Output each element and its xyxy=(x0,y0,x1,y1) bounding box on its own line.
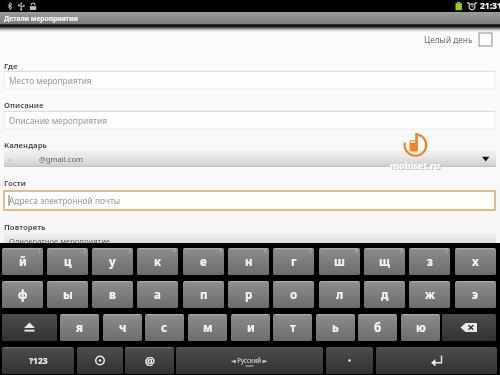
button[interactable]: х xyxy=(455,248,496,275)
button[interactable]: о xyxy=(273,281,314,308)
button[interactable]: т xyxy=(273,314,312,341)
staticText: 9 xyxy=(400,248,403,255)
button[interactable]: ч xyxy=(103,314,142,341)
staticText: 2 xyxy=(83,248,86,255)
staticText: ф xyxy=(18,287,28,303)
button[interactable]: ж xyxy=(409,281,450,308)
staticText: 5 xyxy=(219,248,222,255)
staticText: ш xyxy=(334,254,345,270)
button[interactable]: Backspace xyxy=(442,314,496,341)
button[interactable]: и xyxy=(231,314,270,341)
staticText: з xyxy=(427,254,433,270)
staticText: и xyxy=(247,320,255,336)
staticText: ?123 xyxy=(29,355,48,367)
button[interactable]: Period xyxy=(326,347,373,374)
button[interactable]: ь xyxy=(316,314,355,341)
button[interactable]: с xyxy=(145,314,184,341)
staticText: т xyxy=(290,320,296,336)
staticText: mobiset.ru xyxy=(391,160,441,173)
staticText: 1 xyxy=(38,248,41,255)
staticText: 6 xyxy=(264,248,267,255)
button[interactable]: д xyxy=(364,281,405,308)
button[interactable]: Адреса электронной почты xyxy=(4,191,495,210)
button[interactable]: г xyxy=(273,248,314,275)
staticText: э xyxy=(472,287,479,303)
staticText: г xyxy=(291,254,297,270)
staticText: Целый день xyxy=(424,34,473,45)
button[interactable]: к xyxy=(137,248,178,275)
button[interactable]: п xyxy=(183,281,224,308)
staticText: а xyxy=(154,287,161,303)
button[interactable]: Shift xyxy=(2,314,57,341)
staticText: б xyxy=(374,320,382,336)
staticText: 0 xyxy=(445,248,448,255)
staticText: е xyxy=(200,254,207,270)
staticText: 3 xyxy=(128,248,131,255)
button[interactable]: Описание мероприятия xyxy=(4,111,495,129)
staticText: Повторять xyxy=(4,222,46,232)
button[interactable]: з xyxy=(409,248,450,275)
button[interactable]: ю xyxy=(401,314,440,341)
staticText: Однократное мероприятие xyxy=(9,236,111,246)
staticText: 7 xyxy=(309,248,312,255)
staticText: Место мероприятия xyxy=(9,75,92,86)
button[interactable]: @ xyxy=(125,347,174,374)
button[interactable]: у xyxy=(92,248,133,275)
staticText: Гости xyxy=(4,178,26,188)
button[interactable]: Однократное мероприятие xyxy=(4,233,496,249)
button[interactable]: ?123 xyxy=(2,347,74,374)
staticText: Детали мероприятия xyxy=(4,14,78,23)
staticText: в xyxy=(109,287,116,303)
staticText: р xyxy=(245,287,253,303)
staticText: щ xyxy=(379,254,390,270)
staticText: 21:31 xyxy=(480,0,500,12)
button[interactable]: ф xyxy=(2,281,43,308)
button[interactable]: Enter xyxy=(376,347,497,374)
staticText: Календарь xyxy=(4,140,48,150)
button[interactable]: @gmail.com xyxy=(4,151,496,167)
button[interactable]: й xyxy=(2,248,43,275)
button[interactable]: Целый день xyxy=(424,33,492,46)
button[interactable]: ш xyxy=(319,248,360,275)
staticText: к xyxy=(154,254,162,270)
staticText: д xyxy=(381,287,389,303)
button[interactable]: ы xyxy=(47,281,88,308)
button[interactable]: м xyxy=(188,314,227,341)
button[interactable]: л xyxy=(319,281,360,308)
button[interactable]: е xyxy=(183,248,224,275)
staticText: ц xyxy=(64,254,72,270)
staticText: м xyxy=(203,320,213,336)
button[interactable]: н xyxy=(228,248,269,275)
staticText: Описание мероприятия xyxy=(9,115,107,126)
staticText: mobiset.ru xyxy=(390,159,440,172)
staticText: ч xyxy=(119,320,127,336)
staticText: ь xyxy=(332,320,339,336)
button[interactable]: в xyxy=(92,281,133,308)
button[interactable]: Emoji xyxy=(77,347,123,374)
staticText: ◄ Русский ► xyxy=(231,356,268,364)
staticText: п xyxy=(200,287,208,303)
staticText: я xyxy=(76,320,83,336)
staticText: о xyxy=(290,287,298,303)
staticText: у xyxy=(109,254,116,270)
button[interactable]: щ xyxy=(364,248,405,275)
staticText: с xyxy=(161,320,168,336)
staticText: Описание xyxy=(4,100,44,110)
staticText: ж xyxy=(425,287,435,303)
staticText: ю xyxy=(416,320,426,336)
button[interactable]: р xyxy=(228,281,269,308)
button[interactable]: ц xyxy=(47,248,88,275)
button[interactable]: ◄ Русский ► xyxy=(176,347,323,374)
button[interactable]: э xyxy=(455,281,496,308)
staticText: х xyxy=(472,254,479,270)
staticText: й xyxy=(19,254,27,270)
staticText: @ xyxy=(145,353,155,368)
button[interactable]: а xyxy=(137,281,178,308)
button[interactable]: я xyxy=(60,314,99,341)
staticText: Где xyxy=(4,61,18,71)
button[interactable]: б xyxy=(358,314,397,341)
button[interactable]: Место мероприятия xyxy=(4,71,495,89)
staticText: ы xyxy=(63,287,73,303)
staticText: н xyxy=(245,254,253,270)
staticText: л xyxy=(336,287,344,303)
